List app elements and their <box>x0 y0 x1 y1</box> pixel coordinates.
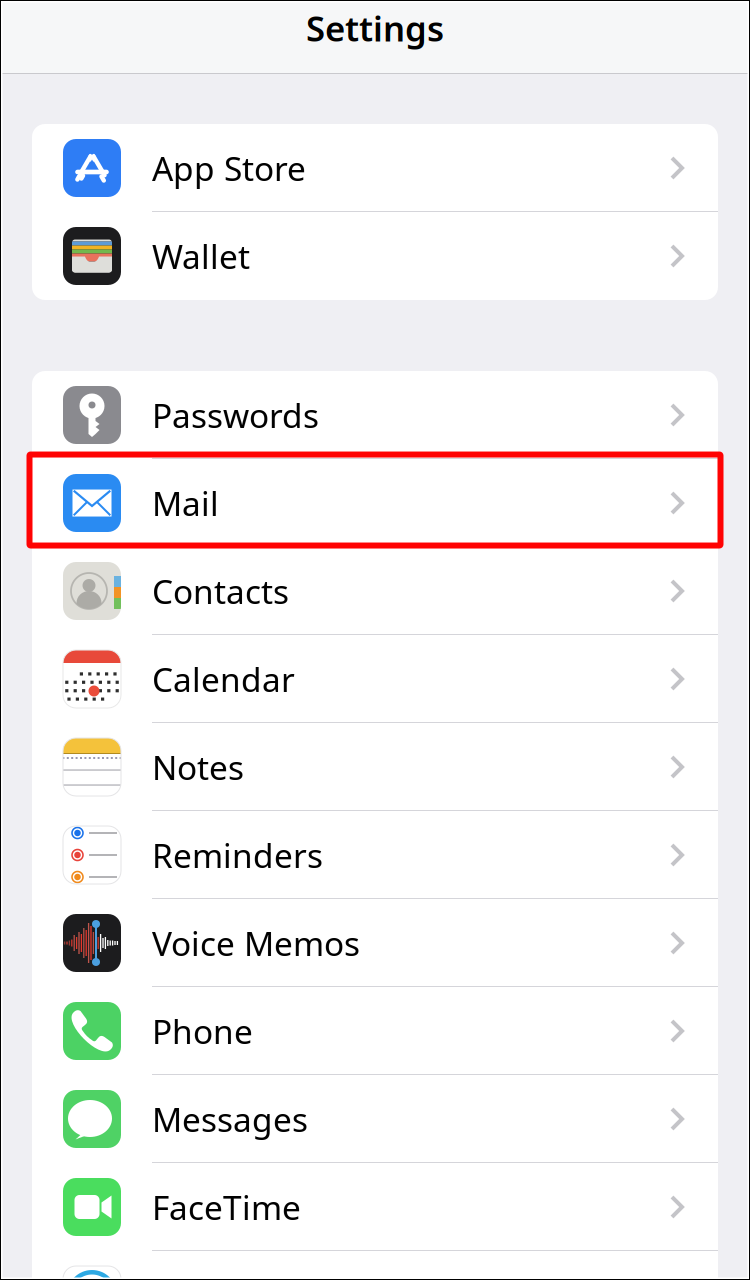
staticText: Notes <box>152 745 244 789</box>
staticText: Messages <box>152 1097 308 1141</box>
button[interactable]: Reminders <box>32 811 718 899</box>
staticText: Contacts <box>152 569 289 613</box>
staticText: FaceTime <box>152 1185 301 1229</box>
button[interactable]: Notes <box>32 723 718 811</box>
button[interactable]: Phone <box>32 987 718 1075</box>
button[interactable]: Voice Memos <box>32 899 718 987</box>
button[interactable]: Contacts <box>32 547 718 635</box>
staticText: Safari <box>152 1273 242 1280</box>
button[interactable]: Mail <box>32 459 718 547</box>
button[interactable]: Calendar <box>32 635 718 723</box>
staticText: Wallet <box>152 234 250 278</box>
staticText: Settings <box>306 5 444 51</box>
staticText: Phone <box>152 1009 253 1053</box>
staticText: Reminders <box>152 833 323 877</box>
button[interactable]: Messages <box>32 1075 718 1163</box>
staticText: Mail <box>152 481 219 525</box>
button[interactable]: Passwords <box>32 371 718 459</box>
staticText: Voice Memos <box>152 921 360 965</box>
staticText: Passwords <box>152 393 319 437</box>
button[interactable]: App Store <box>32 124 718 212</box>
staticText: App Store <box>152 146 306 190</box>
staticText: Calendar <box>152 657 295 701</box>
button[interactable]: FaceTime <box>32 1163 718 1251</box>
button[interactable]: Safari <box>32 1251 718 1280</box>
button[interactable]: Wallet <box>32 212 718 300</box>
